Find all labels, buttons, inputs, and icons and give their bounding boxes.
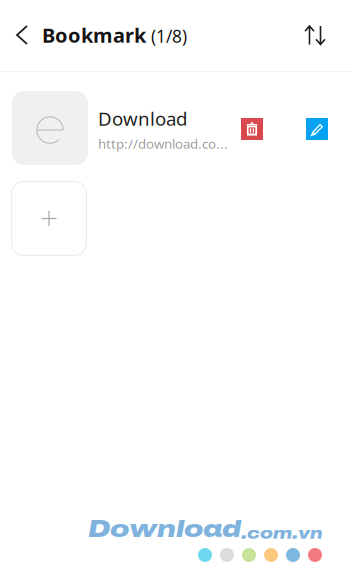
button[interactable]: Download bookmark xyxy=(12,91,88,165)
staticText: .com.vn xyxy=(241,525,323,542)
button[interactable]: Bookmark xyxy=(42,17,187,53)
button[interactable]: Edit xyxy=(306,118,328,140)
button[interactable]: Delete xyxy=(241,118,263,140)
staticText: Bookmark xyxy=(42,22,146,48)
staticText: (1/8) xyxy=(151,24,187,47)
staticText: http://download.co... xyxy=(98,135,228,152)
staticText: Download xyxy=(98,106,187,131)
button[interactable]: Back xyxy=(6,17,38,53)
button[interactable]: Sort xyxy=(295,17,335,53)
button[interactable]: Add bookmark xyxy=(11,181,87,256)
staticText: Download xyxy=(88,516,241,542)
